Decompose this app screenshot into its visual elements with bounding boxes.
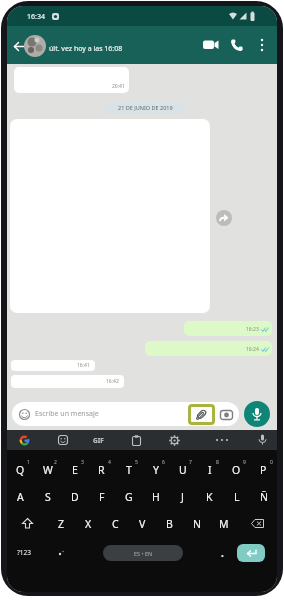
button[interactable]: F (88, 483, 115, 510)
staticText: 16:34 (27, 12, 45, 22)
button[interactable] (169, 435, 180, 446)
staticText: C (112, 517, 119, 531)
button[interactable]: W (34, 456, 61, 483)
button[interactable] (232, 539, 277, 566)
button[interactable]: H (142, 483, 169, 510)
staticText: Ñ (260, 490, 268, 504)
staticText: R (98, 463, 105, 477)
staticText: 0 (270, 459, 273, 466)
button[interactable]: C (102, 510, 129, 537)
button[interactable] (203, 40, 219, 50)
button[interactable] (24, 35, 46, 57)
button[interactable] (41, 539, 81, 566)
staticText: 16:41 (77, 362, 90, 369)
button[interactable]: G (115, 483, 142, 510)
staticText: Z (58, 517, 65, 531)
staticText: F (99, 490, 105, 504)
staticText: N (193, 517, 201, 531)
staticText: A (17, 490, 24, 504)
button[interactable]: N (183, 510, 210, 537)
button[interactable] (215, 438, 229, 442)
staticText: 8 (216, 459, 219, 466)
button[interactable]: Z (47, 510, 75, 537)
button[interactable]: A (7, 483, 34, 510)
staticText: I (208, 463, 212, 477)
staticText: D (71, 490, 79, 504)
staticText: M (219, 517, 229, 531)
staticText: V (139, 517, 146, 531)
button[interactable]: Escribe un mensaje (12, 402, 239, 426)
staticText: ?123 (17, 548, 31, 557)
staticText: ES • EN (134, 550, 153, 557)
staticText: B (166, 517, 173, 531)
staticText: 21 DE JUNIO DE 2019 (118, 104, 173, 111)
staticText: P (260, 463, 267, 477)
staticText: 1 (27, 459, 30, 466)
button[interactable] (14, 42, 24, 51)
button[interactable] (58, 435, 68, 445)
staticText: H (152, 490, 160, 504)
button[interactable]: J (169, 483, 196, 510)
staticText: 16:23 (246, 326, 259, 333)
staticText: Escribe un mensaje (35, 409, 99, 419)
staticText: 3 (81, 459, 84, 466)
staticText: X (85, 517, 92, 531)
button[interactable]: X (75, 510, 102, 537)
staticText: Q (16, 463, 25, 477)
staticText: 16:24 (246, 346, 259, 353)
staticText: T (126, 463, 132, 477)
button[interactable]: R (88, 456, 115, 483)
button[interactable] (244, 401, 270, 427)
staticText: U (179, 463, 187, 477)
button[interactable] (259, 38, 265, 52)
staticText: 2 (54, 459, 57, 466)
staticText: L (234, 490, 240, 504)
button[interactable]: S (34, 483, 61, 510)
button[interactable]: E (61, 456, 88, 483)
staticText: Y (153, 463, 159, 477)
button[interactable]: K (196, 483, 223, 510)
staticText: 5 (135, 459, 138, 466)
button[interactable] (19, 435, 30, 446)
button[interactable]: V (129, 510, 156, 537)
button[interactable] (216, 210, 232, 226)
staticText: . (221, 546, 224, 560)
button[interactable]: L (223, 483, 250, 510)
button[interactable]: I (196, 456, 223, 483)
button[interactable]: D (61, 483, 88, 510)
staticText: 4 (108, 459, 111, 466)
staticText: K (206, 490, 213, 504)
staticText: O (232, 463, 241, 477)
button[interactable]: Q (7, 456, 34, 483)
button[interactable] (237, 510, 277, 537)
button[interactable]: P (250, 456, 277, 483)
button[interactable]: ?123 (7, 539, 41, 566)
button[interactable]: . (212, 539, 232, 566)
button[interactable]: Ñ (250, 483, 277, 510)
staticText: 20:41 (112, 83, 125, 90)
staticText: S (45, 490, 51, 504)
button[interactable]: Y (142, 456, 169, 483)
staticText: 7 (189, 459, 192, 466)
staticText: E (72, 463, 78, 477)
staticText: G (125, 490, 133, 504)
button[interactable] (231, 39, 243, 51)
staticText: últ. vez hoy a las 16:08 (49, 44, 123, 54)
staticText: 6 (162, 459, 165, 466)
button[interactable]: T (115, 456, 142, 483)
button[interactable]: GIF (93, 436, 104, 445)
staticText: 16:42 (106, 378, 119, 385)
button[interactable] (7, 510, 47, 537)
button[interactable] (258, 434, 267, 446)
button[interactable]: ES • EN (81, 539, 212, 566)
button[interactable] (132, 435, 141, 446)
staticText: W (43, 463, 53, 477)
button[interactable]: U (169, 456, 196, 483)
staticText: 9 (243, 459, 246, 466)
button[interactable]: O (223, 456, 250, 483)
button[interactable]: B (156, 510, 183, 537)
staticText: J (181, 490, 184, 504)
button[interactable]: M (210, 510, 237, 537)
